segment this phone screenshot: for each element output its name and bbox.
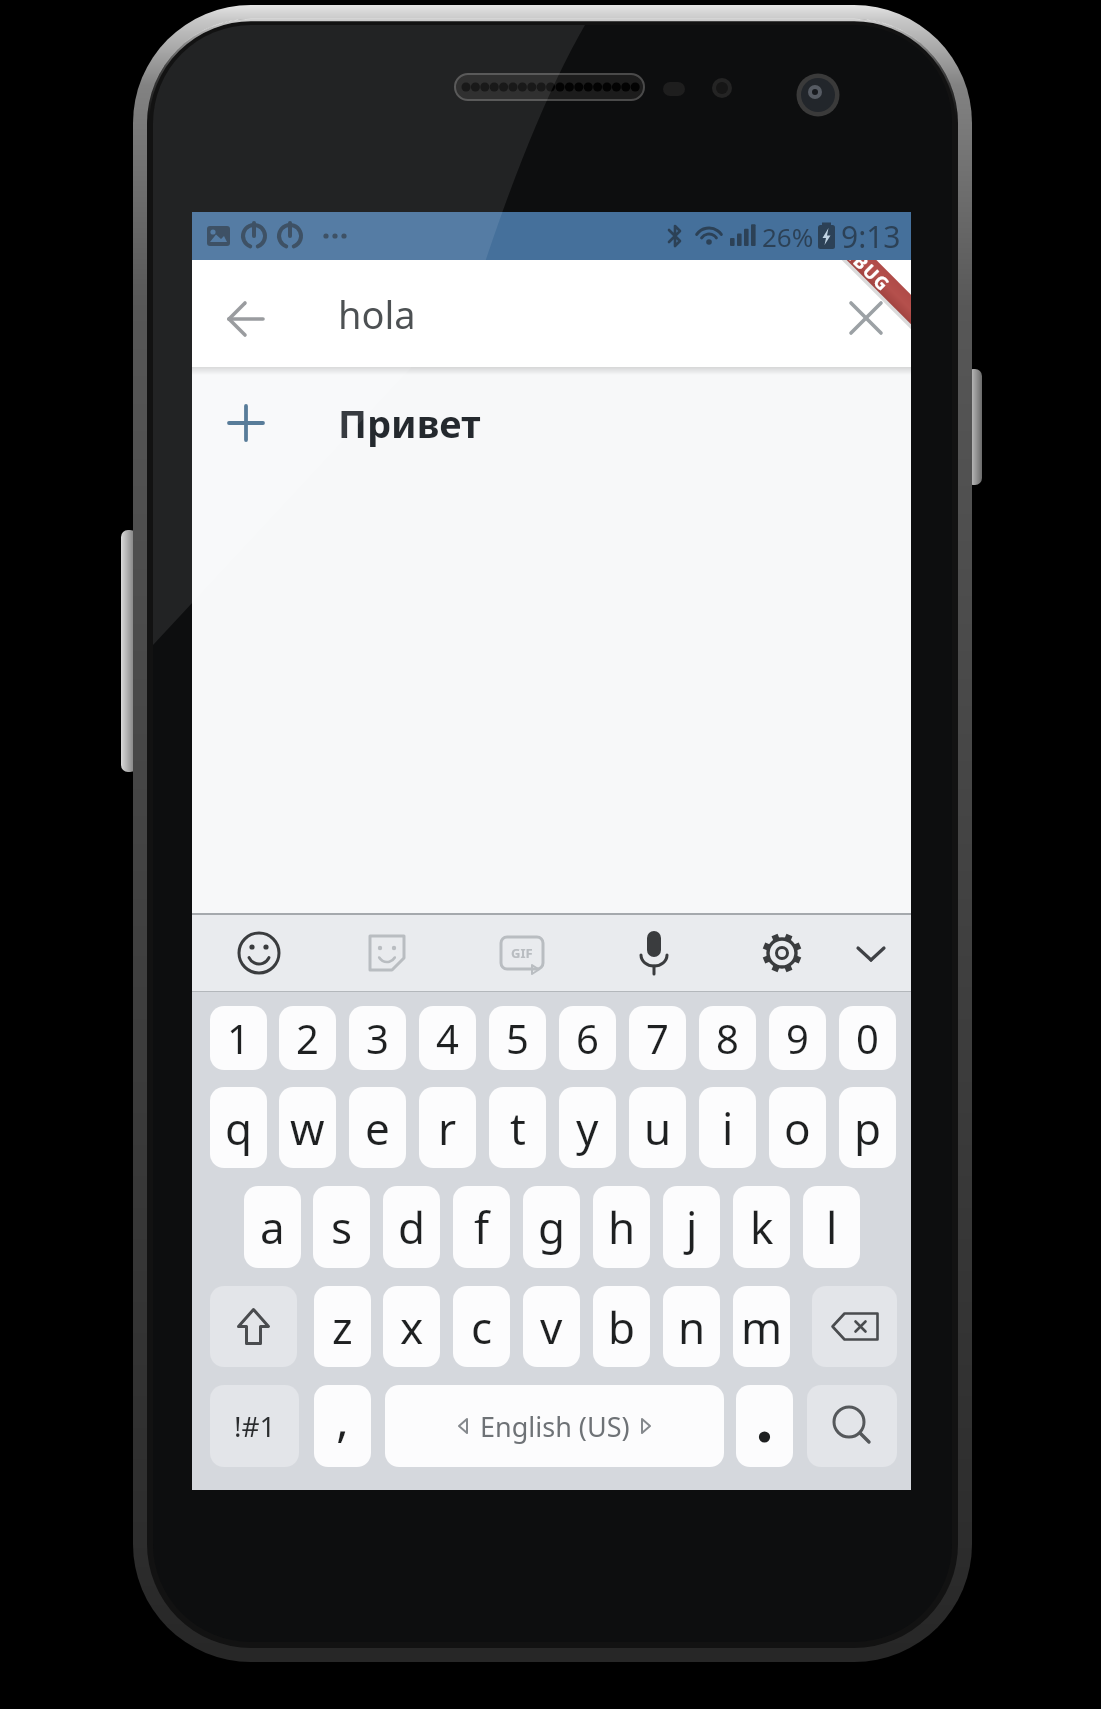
staticText: k bbox=[750, 1197, 774, 1257]
button[interactable]: 9 bbox=[769, 1006, 826, 1070]
staticText: h bbox=[608, 1197, 636, 1257]
staticText: !#1 bbox=[234, 1407, 276, 1445]
staticText: i bbox=[722, 1098, 734, 1158]
button[interactable]: v bbox=[523, 1286, 580, 1367]
button[interactable]: l bbox=[803, 1186, 860, 1268]
staticText: e bbox=[365, 1098, 390, 1158]
staticText: 4 bbox=[436, 1011, 459, 1065]
button[interactable]: Привет bbox=[192, 375, 911, 471]
button[interactable]: !#1 bbox=[210, 1385, 299, 1467]
button[interactable] bbox=[807, 1385, 897, 1467]
staticText: 1 bbox=[227, 1011, 250, 1065]
button[interactable]: 6 bbox=[559, 1006, 616, 1070]
staticText: s bbox=[331, 1197, 353, 1257]
button[interactable] bbox=[357, 923, 417, 983]
button[interactable]: c bbox=[453, 1286, 510, 1367]
staticText: l bbox=[826, 1197, 838, 1257]
button[interactable] bbox=[229, 923, 289, 983]
button[interactable]: m bbox=[733, 1286, 790, 1367]
staticText: w bbox=[290, 1098, 325, 1158]
button[interactable]: n bbox=[663, 1286, 720, 1367]
button[interactable] bbox=[841, 923, 901, 983]
button[interactable]: 0 bbox=[839, 1006, 896, 1070]
staticText: p bbox=[854, 1098, 882, 1158]
staticText: j bbox=[686, 1197, 698, 1257]
button[interactable]: i bbox=[699, 1087, 756, 1168]
button[interactable]: p bbox=[839, 1087, 896, 1168]
staticText: g bbox=[538, 1197, 566, 1257]
staticText: r bbox=[438, 1098, 457, 1158]
staticText: 26% bbox=[762, 219, 814, 254]
staticText: , bbox=[336, 1386, 349, 1451]
staticText: q bbox=[225, 1098, 253, 1158]
staticText: 7 bbox=[646, 1011, 669, 1065]
button[interactable] bbox=[736, 1385, 793, 1467]
staticText: 6 bbox=[576, 1011, 599, 1065]
staticText: b bbox=[608, 1297, 636, 1357]
staticText: Привет bbox=[338, 397, 481, 449]
button[interactable]: 5 bbox=[489, 1006, 546, 1070]
staticText: 8 bbox=[716, 1011, 739, 1065]
button[interactable]: 7 bbox=[629, 1006, 686, 1070]
button[interactable]: h bbox=[593, 1186, 650, 1268]
button[interactable]: 2 bbox=[279, 1006, 336, 1070]
button[interactable]: y bbox=[559, 1087, 616, 1168]
button[interactable]: k bbox=[733, 1186, 790, 1268]
button[interactable] bbox=[492, 923, 552, 983]
button[interactable]: s bbox=[313, 1186, 370, 1268]
staticText: z bbox=[332, 1297, 353, 1357]
button[interactable]: , bbox=[314, 1385, 371, 1467]
button[interactable] bbox=[624, 923, 684, 983]
button[interactable]: 3 bbox=[349, 1006, 406, 1070]
staticText: English (US) bbox=[480, 1408, 630, 1445]
button[interactable]: b bbox=[593, 1286, 650, 1367]
staticText: c bbox=[471, 1297, 493, 1357]
button[interactable]: j bbox=[663, 1186, 720, 1268]
button[interactable]: f bbox=[453, 1186, 510, 1268]
button[interactable] bbox=[836, 288, 896, 348]
staticText: v bbox=[540, 1297, 563, 1357]
button[interactable]: 4 bbox=[419, 1006, 476, 1070]
button[interactable] bbox=[210, 1286, 297, 1367]
staticText: o bbox=[784, 1098, 811, 1158]
staticText: d bbox=[398, 1197, 426, 1257]
staticText: 3 bbox=[366, 1011, 389, 1065]
button[interactable] bbox=[812, 1286, 897, 1367]
button[interactable]: u bbox=[629, 1087, 686, 1168]
staticText: 9:13 bbox=[841, 216, 901, 257]
staticText: 0 bbox=[856, 1011, 879, 1065]
staticText: hola bbox=[338, 288, 416, 340]
button[interactable] bbox=[752, 923, 812, 983]
button[interactable]: 8 bbox=[699, 1006, 756, 1070]
staticText: u bbox=[644, 1098, 672, 1158]
button[interactable]: d bbox=[383, 1186, 440, 1268]
button[interactable]: r bbox=[419, 1087, 476, 1168]
staticText: t bbox=[510, 1098, 526, 1158]
button[interactable]: English (US) bbox=[385, 1385, 724, 1467]
staticText: 9 bbox=[786, 1011, 809, 1065]
button[interactable] bbox=[214, 287, 278, 351]
staticText: f bbox=[474, 1197, 490, 1257]
staticText: 2 bbox=[296, 1011, 319, 1065]
staticText: GIF bbox=[511, 944, 533, 962]
button[interactable]: t bbox=[489, 1087, 546, 1168]
button[interactable]: e bbox=[349, 1087, 406, 1168]
staticText: DEBUG bbox=[832, 260, 896, 295]
button[interactable]: w bbox=[279, 1087, 336, 1168]
staticText: a bbox=[260, 1197, 285, 1257]
staticText: n bbox=[678, 1297, 706, 1357]
button[interactable]: q bbox=[210, 1087, 267, 1168]
button[interactable]: g bbox=[523, 1186, 580, 1268]
button[interactable]: o bbox=[769, 1087, 826, 1168]
staticText: x bbox=[400, 1297, 424, 1357]
button[interactable]: 1 bbox=[210, 1006, 267, 1070]
staticText: y bbox=[576, 1098, 599, 1158]
button[interactable]: z bbox=[314, 1286, 371, 1367]
button[interactable]: a bbox=[244, 1186, 301, 1268]
button[interactable]: x bbox=[383, 1286, 440, 1367]
staticText: 5 bbox=[506, 1011, 529, 1065]
staticText: m bbox=[741, 1297, 783, 1357]
